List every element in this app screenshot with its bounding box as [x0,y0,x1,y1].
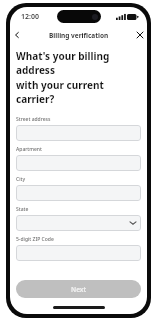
staticText: with your current carrier? [16,78,141,106]
staticText: What's your billing address [16,49,141,77]
button[interactable]: 5-digit ZIP Code [16,245,141,261]
button[interactable]: Back [10,28,24,42]
button[interactable]: Next [16,280,141,298]
staticText: Next [71,285,87,294]
button[interactable]: Street address [16,125,141,141]
staticText: 5-digit ZIP Code [16,236,54,243]
button[interactable]: Apartment [16,155,141,171]
staticText: Apartment [16,146,42,153]
button[interactable]: State [16,215,141,231]
staticText: City [16,176,26,183]
button[interactable]: City [16,185,141,201]
button[interactable]: Close [133,28,147,42]
staticText: State [16,206,29,213]
staticText: Street address [16,116,51,123]
staticText: 12:00 [21,12,39,22]
staticText: Billing verification [49,31,109,40]
